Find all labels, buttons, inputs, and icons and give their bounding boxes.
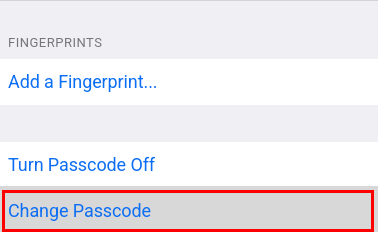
staticText: Change Passcode bbox=[8, 200, 151, 221]
button[interactable]: Add a Fingerprint... bbox=[0, 59, 378, 105]
button[interactable]: Turn Passcode Off bbox=[0, 142, 378, 186]
staticText: Add a Fingerprint... bbox=[8, 71, 158, 92]
staticText: Turn Passcode Off bbox=[8, 154, 156, 175]
button[interactable]: Change Passcode bbox=[0, 186, 378, 232]
other: Highlighted: Change Passcode bbox=[2, 190, 374, 232]
staticText: FINGERPRINTS bbox=[8, 35, 103, 50]
